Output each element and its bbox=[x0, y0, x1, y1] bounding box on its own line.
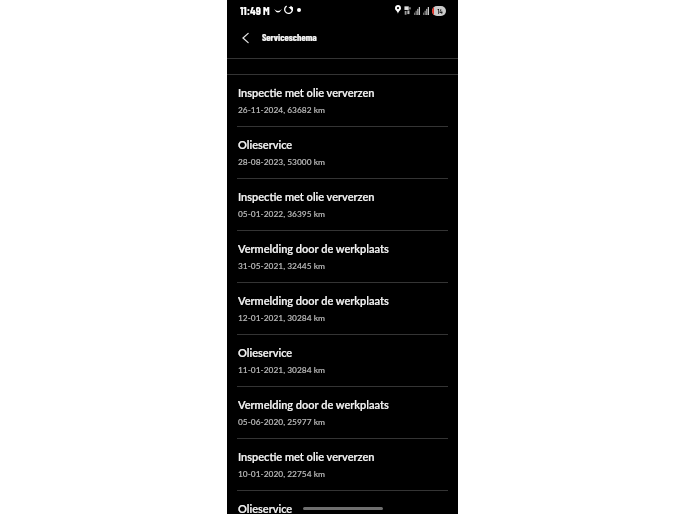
staticText: Olieservice bbox=[238, 138, 293, 151]
staticText: 14 bbox=[433, 7, 446, 15]
staticText: 10-01-2020, 22754 km bbox=[238, 469, 325, 479]
staticText: M bbox=[263, 4, 270, 17]
staticText: 05-06-2020, 25977 km bbox=[238, 417, 325, 427]
button[interactable]: Olieservice bbox=[227, 127, 458, 178]
staticText: Serviceschema bbox=[262, 31, 317, 43]
button[interactable]: Olieservice bbox=[227, 491, 458, 514]
staticText: 12-01-2021, 30284 km bbox=[238, 313, 325, 323]
button[interactable]: Vermelding door de werkplaats bbox=[227, 387, 458, 438]
staticText: Olieservice bbox=[238, 346, 293, 359]
staticText: 26-11-2024, 63682 km bbox=[238, 105, 325, 115]
button[interactable]: Olieservice bbox=[227, 335, 458, 386]
staticText: Olieservice bbox=[238, 502, 293, 514]
staticText: Inspectie met olie ververzen bbox=[238, 190, 375, 203]
staticText: 11-01-2021, 30284 km bbox=[238, 365, 325, 375]
staticText: Inspectie met olie ververzen bbox=[238, 86, 375, 99]
staticText: Vermelding door de werkplaats bbox=[238, 294, 389, 307]
button[interactable]: Inspectie met olie ververzen bbox=[227, 439, 458, 490]
staticText: Inspectie met olie ververzen bbox=[238, 450, 375, 463]
button[interactable]: Vermelding door de werkplaats bbox=[227, 283, 458, 334]
staticText: Vermelding door de werkplaats bbox=[238, 242, 389, 255]
button[interactable]: Vermelding door de werkplaats bbox=[227, 231, 458, 282]
button[interactable]: Back bbox=[234, 26, 257, 49]
staticText: 11:49 bbox=[240, 4, 261, 17]
staticText: Vermelding door de werkplaats bbox=[238, 398, 389, 411]
staticText: 31-05-2021, 32445 km bbox=[238, 261, 325, 271]
button[interactable]: Inspectie met olie ververzen bbox=[227, 179, 458, 230]
staticText: 05-01-2022, 36395 km bbox=[238, 209, 325, 219]
staticText: 28-08-2023, 53000 km bbox=[238, 157, 325, 167]
button[interactable]: Inspectie met olie ververzen bbox=[227, 75, 458, 126]
